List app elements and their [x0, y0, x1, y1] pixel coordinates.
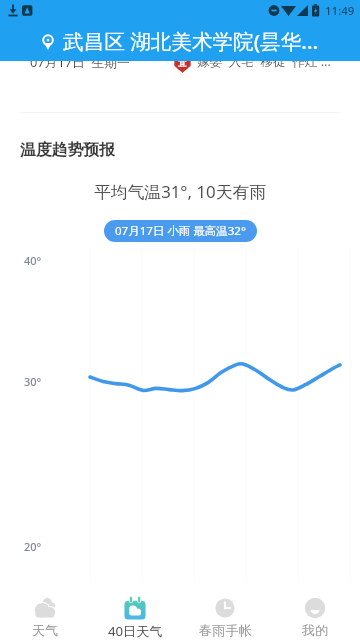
staticText: 11:49 [325, 3, 355, 19]
button[interactable]: 我的 [270, 582, 360, 640]
button[interactable]: 40日天气 [90, 582, 180, 640]
staticText: 宜 [178, 58, 187, 69]
staticText: 温度趋势预报 [20, 140, 115, 160]
staticText: 20° [24, 539, 42, 554]
staticText: 我的 [302, 622, 329, 639]
button[interactable]: 武昌区 湖北美术学院(昙华... [0, 21, 360, 61]
staticText: 30° [24, 374, 42, 389]
staticText: 07月17日 生期一 [30, 53, 130, 70]
staticText: 平均气温31°, 10天有雨 [0, 180, 360, 203]
staticText: 40° [24, 253, 42, 268]
button[interactable]: 春雨手帐 [180, 582, 270, 640]
staticText: 嫁娶 入宅 移徙 作灶 ... [197, 53, 331, 70]
staticText: 天气 [32, 622, 59, 639]
button[interactable]: 天气 [0, 582, 90, 640]
staticText: 07月17日 小雨 最高温32° [115, 223, 246, 239]
staticText: 40日天气 [108, 622, 163, 640]
staticText: 春雨手帐 [199, 622, 252, 639]
button[interactable]: 07月17日 小雨 最高温32° [104, 220, 257, 242]
staticText: 武昌区 湖北美术学院(昙华... [63, 27, 319, 55]
